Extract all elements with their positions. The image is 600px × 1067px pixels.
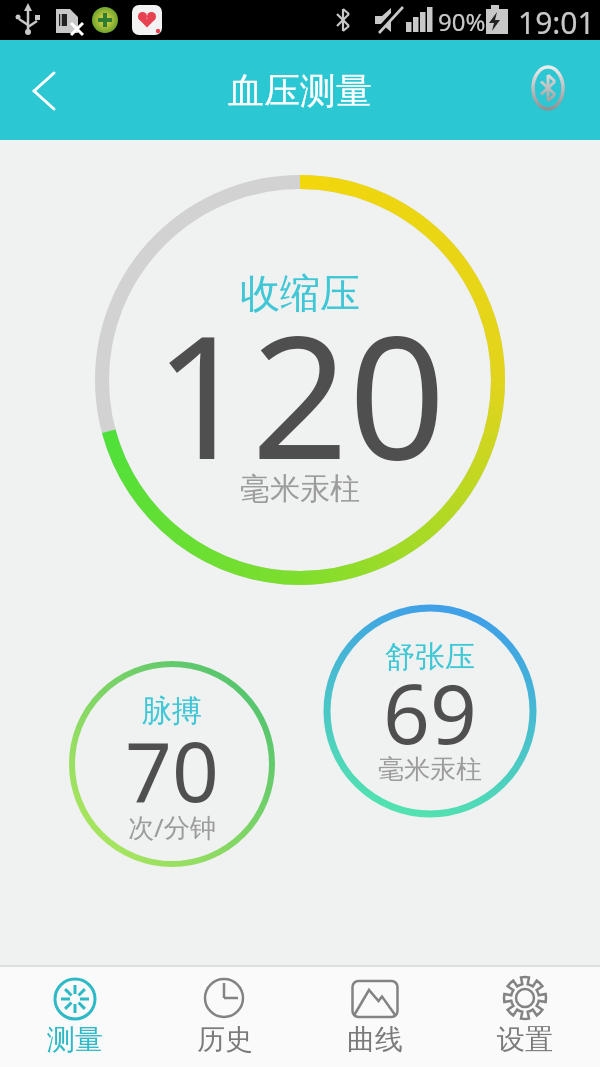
staticText: 收缩压 [240, 268, 360, 318]
staticText: 血压测量 [228, 68, 372, 113]
staticText: 曲线 [347, 1022, 403, 1057]
button[interactable]: 历史 [150, 967, 300, 1067]
button[interactable] [10, 60, 80, 120]
staticText: 69 [383, 656, 477, 766]
staticText: 毫米汞柱 [378, 753, 482, 786]
staticText: 设置 [497, 1022, 553, 1057]
staticText: 舒张压 [385, 638, 475, 676]
button[interactable]: 设置 [450, 967, 600, 1067]
staticText: 70 [125, 714, 219, 824]
staticText: 脉搏 [142, 692, 202, 730]
staticText: 历史 [197, 1022, 253, 1057]
button[interactable]: 曲线 [300, 967, 450, 1067]
button[interactable]: 测量 [0, 967, 150, 1067]
staticText: 毫米汞柱 [240, 470, 360, 508]
staticText: 120 [154, 277, 446, 497]
staticText: 19:01 [518, 2, 595, 38]
staticText: 次/分钟 [128, 809, 216, 845]
button[interactable] [520, 58, 580, 118]
staticText: 90% [438, 5, 486, 38]
staticText: 测量 [47, 1022, 103, 1057]
